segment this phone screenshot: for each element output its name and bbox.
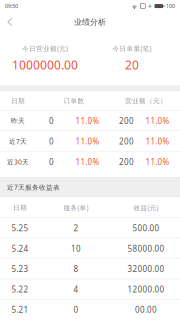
staticText: 12000.00 (127, 284, 164, 295)
staticText: 订单数 (63, 97, 84, 105)
staticText: 业绩分析 (74, 17, 106, 27)
staticText: 收益(元) (133, 203, 158, 212)
staticText: 5.25 (11, 223, 28, 233)
staticText: 09:50 (5, 2, 18, 10)
staticText: 今日单量(笔) (112, 44, 151, 53)
staticText: 11.0% (145, 156, 169, 167)
staticText: 5.21 (11, 304, 28, 315)
staticText: 近30天 (7, 157, 29, 166)
staticText: 10 (71, 243, 81, 254)
staticText: 近7天 (9, 137, 27, 146)
staticText: + (148, 2, 152, 10)
staticText: 8 (73, 264, 78, 274)
staticText: 昨天 (11, 117, 25, 125)
staticText: 500.00 (132, 223, 159, 233)
staticText: 100 (166, 2, 175, 10)
staticText: 11.0% (145, 136, 169, 147)
staticText: 58000.00 (127, 243, 164, 254)
staticText: 200 (119, 136, 134, 147)
staticText: 20 (125, 57, 139, 73)
staticText: 200 (119, 115, 134, 126)
staticText: 5.24 (11, 243, 28, 254)
staticText: 0 (49, 136, 54, 147)
staticText: 11.0% (145, 115, 169, 126)
button[interactable]: Back (0, 12, 20, 32)
staticText: 0 (49, 115, 54, 126)
staticText: 00.00 (135, 304, 157, 315)
staticText: 200 (119, 156, 134, 167)
staticText: 11.0% (75, 156, 99, 167)
staticText: 0 (49, 156, 54, 167)
staticText: 1000000.00 (12, 57, 78, 73)
staticText: 日期 (11, 97, 25, 105)
staticText: 服务(单) (63, 203, 88, 212)
staticText: 营业额（元） (125, 97, 167, 105)
staticText: 今日营业额(元) (22, 44, 68, 53)
staticText: 0 (73, 304, 78, 315)
staticText: 11.0% (75, 136, 99, 147)
staticText: 2 (73, 223, 78, 233)
staticText: 4 (73, 284, 78, 295)
staticText: 32000.00 (127, 264, 164, 274)
staticText: 5.22 (11, 284, 28, 295)
staticText: 5.23 (11, 264, 28, 274)
staticText: 近7天服务收益表 (7, 183, 60, 192)
staticText: 日期 (13, 204, 27, 212)
staticText: 11.0% (75, 115, 99, 126)
